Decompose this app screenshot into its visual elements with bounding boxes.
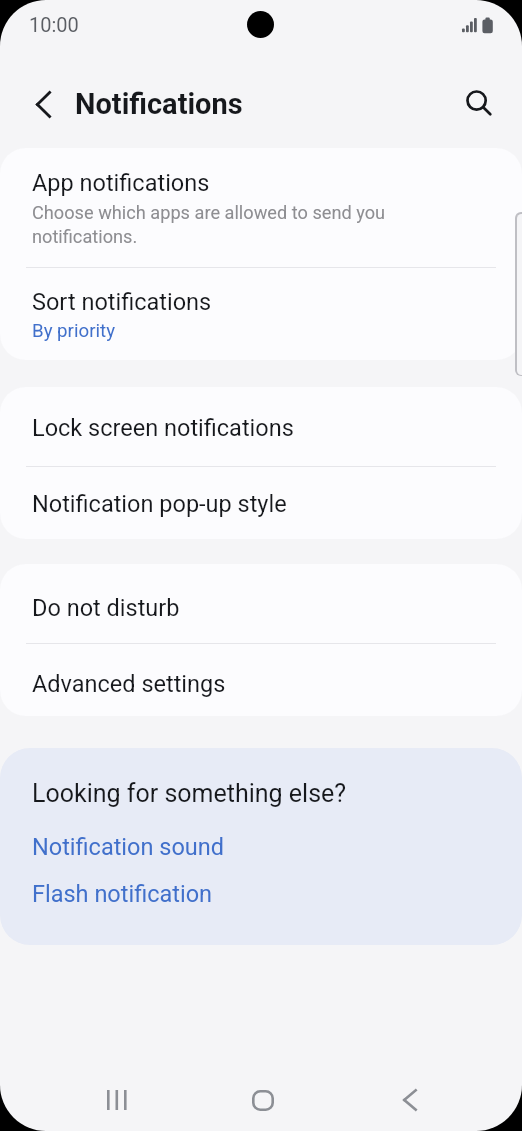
button[interactable]: Back bbox=[387, 1077, 433, 1123]
button[interactable]: Home bbox=[240, 1077, 286, 1123]
staticText: App notifications bbox=[32, 169, 210, 197]
staticText: Do not disturb bbox=[32, 594, 180, 622]
staticText: Notifications bbox=[75, 87, 243, 121]
button[interactable]: Advanced settings bbox=[0, 644, 522, 716]
button[interactable]: Back bbox=[20, 81, 67, 128]
staticText: Sort notifications bbox=[32, 288, 212, 316]
staticText: 10:00 bbox=[29, 13, 79, 36]
staticText: Looking for something else? bbox=[32, 779, 347, 808]
button[interactable]: Sort notifications bbox=[0, 268, 522, 360]
button[interactable]: Do not disturb bbox=[0, 564, 522, 643]
button[interactable]: Search bbox=[457, 81, 501, 125]
staticText: Flash notification bbox=[32, 880, 213, 908]
staticText: Advanced settings bbox=[32, 670, 226, 698]
button[interactable]: App notifications bbox=[0, 148, 522, 267]
button[interactable]: Recent apps bbox=[94, 1077, 140, 1123]
button[interactable]: Notification sound bbox=[32, 833, 225, 861]
button[interactable]: Lock screen notifications bbox=[0, 387, 522, 466]
staticText: Notification pop-up style bbox=[32, 490, 287, 518]
staticText: By priority bbox=[32, 320, 115, 342]
button[interactable]: Flash notification bbox=[32, 880, 213, 908]
staticText: Choose which apps are allowed to send yo… bbox=[32, 202, 394, 247]
staticText: Lock screen notifications bbox=[32, 414, 294, 442]
staticText: Notification sound bbox=[32, 833, 225, 861]
button[interactable]: Notification pop-up style bbox=[0, 467, 522, 539]
